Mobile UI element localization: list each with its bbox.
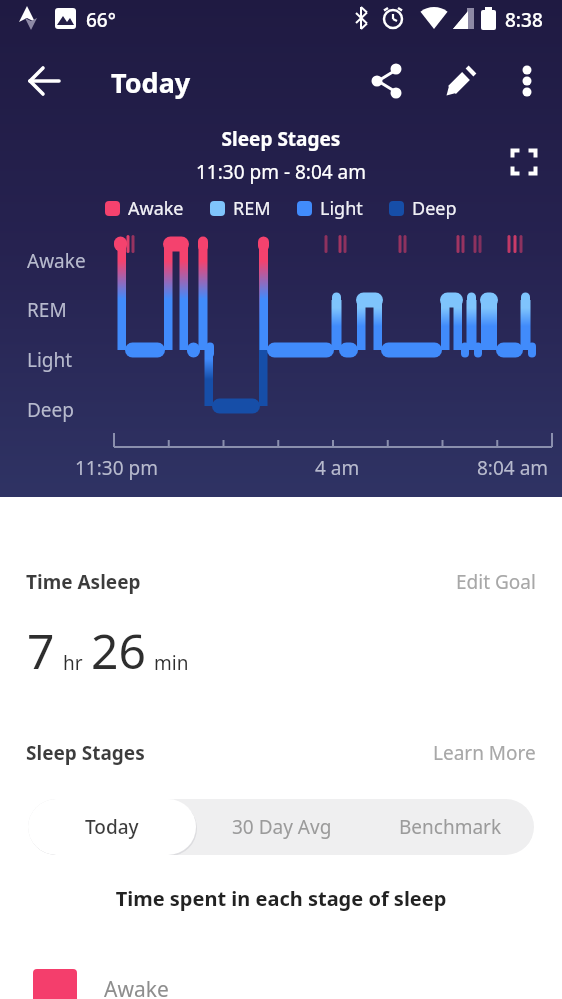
button[interactable]: [503, 57, 551, 105]
staticText: min: [154, 650, 189, 676]
staticText: Time spent in each stage of sleep: [0, 885, 562, 912]
staticText: 4 am: [315, 455, 360, 481]
staticText: Time Asleep: [26, 569, 141, 595]
staticText: Awake: [27, 248, 86, 274]
button[interactable]: Learn More: [433, 740, 536, 766]
staticText: 11:30 pm - 8:04 am: [0, 159, 562, 185]
button[interactable]: Today: [28, 799, 196, 855]
staticText: Benchmark: [399, 814, 502, 840]
staticText: 11:30 pm: [75, 455, 158, 481]
button[interactable]: Benchmark: [366, 799, 534, 855]
staticText: Deep: [27, 397, 74, 423]
staticText: 66°: [86, 7, 116, 33]
staticText: 30 Day Avg: [232, 814, 332, 840]
staticText: hr: [63, 650, 83, 676]
staticText: Light: [27, 347, 73, 373]
staticText: REM: [233, 196, 271, 221]
staticText: REM: [27, 297, 67, 323]
staticText: 8:38: [505, 7, 543, 33]
button[interactable]: [437, 57, 485, 105]
staticText: Today: [111, 64, 191, 101]
staticText: 7: [27, 618, 55, 683]
staticText: Light: [320, 196, 363, 221]
staticText: Awake: [104, 975, 169, 999]
button[interactable]: [500, 138, 548, 186]
button[interactable]: 30 Day Avg: [197, 799, 366, 855]
staticText: Sleep Stages: [0, 126, 562, 152]
staticText: 8:04 am: [477, 455, 549, 481]
staticText: 26: [91, 618, 146, 683]
staticText: Today: [85, 814, 139, 840]
staticText: Deep: [412, 196, 457, 221]
staticText: Sleep Stages: [26, 740, 145, 766]
button[interactable]: Edit Goal: [456, 569, 536, 595]
button[interactable]: [363, 57, 411, 105]
button[interactable]: [20, 57, 68, 105]
staticText: Awake: [128, 196, 184, 221]
